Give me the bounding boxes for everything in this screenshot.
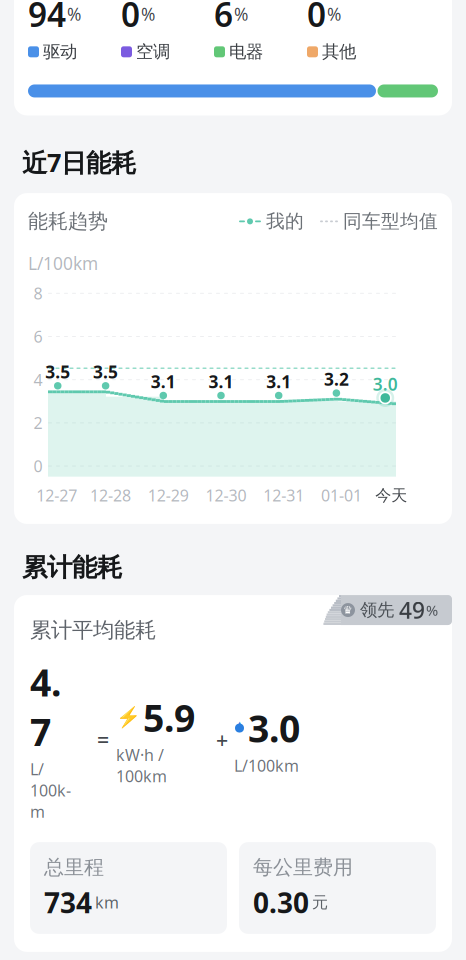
staticText: 近7日能耗 xyxy=(22,145,136,179)
staticText: 其他 xyxy=(322,41,356,62)
staticText: 0 xyxy=(307,0,326,36)
staticText: 元 xyxy=(312,892,328,912)
staticText: 3.1 xyxy=(151,370,176,393)
staticText: 734 xyxy=(44,884,92,921)
staticText: % xyxy=(426,600,438,620)
staticText: 驱动 xyxy=(43,41,77,62)
staticText: 12-27 xyxy=(36,485,77,506)
staticText: 领先 xyxy=(360,599,394,621)
staticText: 12-29 xyxy=(148,485,189,506)
staticText: 总里程 xyxy=(44,855,104,880)
staticText: 6 xyxy=(214,0,233,36)
staticText: 0 xyxy=(121,0,140,36)
staticText: 能耗趋势 xyxy=(28,209,108,234)
staticText: 12-30 xyxy=(205,485,246,506)
staticText: % xyxy=(234,2,248,25)
staticText: 4.7 xyxy=(30,657,61,756)
staticText: 0.30 xyxy=(253,884,309,921)
staticText: 电器 xyxy=(229,41,263,62)
staticText: 我的 xyxy=(266,210,304,233)
staticText: ♛ xyxy=(343,604,353,616)
staticText: ▲ xyxy=(236,719,242,729)
staticText: + xyxy=(216,725,228,754)
staticText: 49 xyxy=(399,595,425,625)
staticText: 3.0 xyxy=(248,703,300,753)
staticText: 5.9 xyxy=(143,693,195,742)
staticText: 3.5 xyxy=(93,360,118,383)
staticText: 3.2 xyxy=(324,368,349,391)
staticText: 3.5 xyxy=(45,360,70,383)
staticText: 2 xyxy=(33,412,42,433)
staticText: % xyxy=(141,2,155,25)
staticText: 8 xyxy=(33,283,42,304)
staticText: 3.1 xyxy=(208,370,233,393)
staticText: = xyxy=(97,725,109,754)
staticText: km xyxy=(95,892,119,913)
staticText: ⚡ xyxy=(116,706,141,729)
staticText: 12-28 xyxy=(90,485,131,506)
staticText: 3.0 xyxy=(373,372,398,395)
staticText: L/100km xyxy=(234,755,299,776)
staticText: 4 xyxy=(33,369,42,390)
staticText: 0 xyxy=(33,455,42,477)
staticText: 3.1 xyxy=(266,370,291,393)
staticText: L/100km xyxy=(28,252,98,275)
staticText: % xyxy=(327,2,341,25)
staticText: 6 xyxy=(33,326,42,347)
staticText: 12-31 xyxy=(263,485,304,506)
staticText: 空调 xyxy=(136,41,170,62)
staticText: 累计能耗 xyxy=(22,552,122,583)
staticText: L/100km xyxy=(30,758,71,822)
staticText: 01-01 xyxy=(321,485,362,506)
staticText: 累计平均能耗 xyxy=(30,617,156,643)
staticText: 94 xyxy=(28,0,66,36)
staticText: 同车型均值 xyxy=(343,210,438,233)
staticText: 今天 xyxy=(375,485,407,505)
staticText: % xyxy=(67,2,81,25)
staticText: kW·h /100km xyxy=(116,744,167,787)
staticText: 每公里费用 xyxy=(253,855,353,880)
